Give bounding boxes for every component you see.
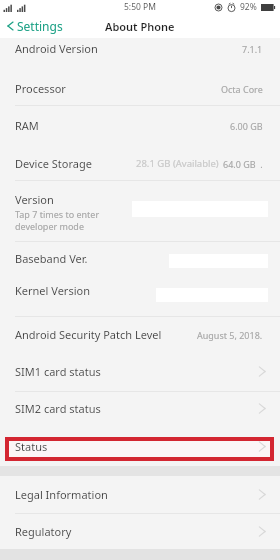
staticText: Device Storage xyxy=(15,156,92,171)
staticText: Kernel Version xyxy=(15,283,90,298)
button[interactable]: Android Security Patch Level xyxy=(0,317,280,355)
button[interactable]: Status xyxy=(0,432,280,461)
button[interactable]: Kernel Version xyxy=(0,275,280,316)
staticText: Processor xyxy=(15,81,66,96)
button[interactable]: Device Storage xyxy=(0,144,280,180)
button[interactable]: Regulatory xyxy=(0,514,280,549)
staticText: Baseband Ver. xyxy=(15,251,88,266)
staticText: Version xyxy=(15,192,54,207)
staticText: SIM2 card status xyxy=(15,401,101,416)
button[interactable]: Processor xyxy=(0,58,280,105)
staticText: Legal Information xyxy=(15,487,108,502)
staticText: 92% xyxy=(240,1,257,13)
button[interactable]: SIM1 card status xyxy=(0,355,280,391)
staticText: 64.0 GB . xyxy=(223,158,263,170)
staticText: About Phone xyxy=(105,19,175,34)
staticText: Tap 7 times to enter xyxy=(15,208,100,220)
staticText: RAM xyxy=(15,118,39,133)
staticText: Regulatory xyxy=(15,524,72,539)
staticText: 28.1 GB (Available) xyxy=(136,157,219,170)
staticText: Android Version xyxy=(15,41,98,56)
staticText: August 5, 2018. xyxy=(197,329,263,341)
button[interactable]: Baseband Ver. xyxy=(0,242,280,275)
button[interactable]: Legal Information xyxy=(0,478,280,513)
staticText: Octa Core xyxy=(221,83,263,95)
staticText: 7.1.1 xyxy=(242,43,263,55)
staticText: SIM1 card status xyxy=(15,364,101,379)
button[interactable]: Settings xyxy=(0,18,71,34)
button[interactable]: Version xyxy=(0,181,280,241)
button[interactable]: SIM2 card status xyxy=(0,392,280,429)
staticText: 5:50 PM xyxy=(124,1,156,13)
staticText: Status xyxy=(15,439,48,454)
staticText: 6.00 GB xyxy=(230,120,263,132)
staticText: Android Security Patch Level xyxy=(15,327,162,342)
button[interactable]: Android Version xyxy=(0,38,280,58)
staticText: Settings xyxy=(17,18,63,34)
button[interactable]: RAM xyxy=(0,106,280,144)
staticText: developer mode xyxy=(15,220,84,232)
